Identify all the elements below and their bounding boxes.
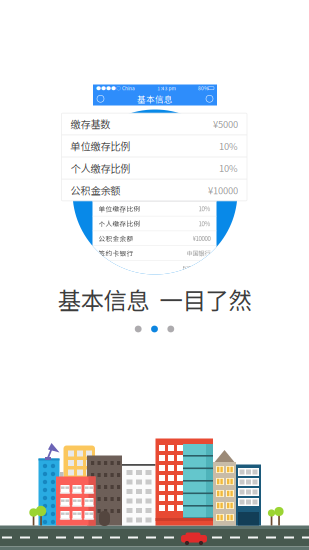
staticText: 公积金余额 (70, 183, 120, 197)
staticText: 单位缴存比例 (70, 139, 130, 153)
staticText: 缴存基数 (70, 116, 110, 131)
staticText: 10% (198, 204, 210, 213)
staticText: 中国银行 (186, 249, 210, 258)
staticText: 10% (219, 139, 238, 153)
staticText: 公积金余额 (98, 233, 133, 243)
staticText: 基本信息 一目了然 (57, 282, 251, 316)
button[interactable]: Home (206, 95, 213, 102)
staticText: ¥5000 (213, 117, 238, 131)
staticText: ¥10000 (208, 183, 238, 197)
staticText: 10% (219, 161, 238, 175)
staticText: 个人缴存比例 (98, 219, 140, 228)
staticText: ¥10000 (192, 234, 210, 243)
staticText: 10% (198, 219, 210, 228)
staticText: 1:43 pm (157, 85, 175, 92)
staticText: 6253 4**** (182, 263, 210, 272)
staticText: 签约卡银行 (98, 248, 133, 258)
button[interactable]: Back (97, 95, 104, 102)
staticText: 单位缴存比例 (98, 204, 140, 214)
staticText: 个人缴存比例 (70, 161, 130, 175)
staticText: 80% (198, 85, 208, 92)
staticText: 基本信息 (137, 93, 173, 105)
staticText: ●●●●○ China (96, 85, 135, 92)
